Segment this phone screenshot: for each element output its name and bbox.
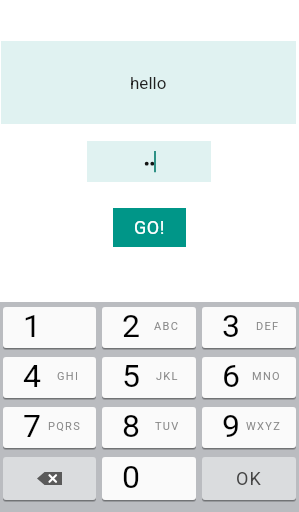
button[interactable]: 5 bbox=[102, 352, 196, 402]
staticText: 1 bbox=[23, 307, 41, 345]
button[interactable]: 1 bbox=[3, 302, 96, 352]
staticText: 7 bbox=[23, 407, 41, 445]
button[interactable]: hello bbox=[1, 41, 296, 124]
button[interactable]: 2 bbox=[102, 302, 196, 352]
staticText: hello bbox=[130, 73, 167, 93]
button[interactable] bbox=[87, 141, 211, 182]
button[interactable]: 3 bbox=[202, 302, 296, 352]
button[interactable]: 4 bbox=[3, 352, 96, 402]
button[interactable]: 8 bbox=[102, 402, 196, 452]
staticText: WXYZ bbox=[246, 420, 282, 433]
button[interactable]: Backspace bbox=[3, 452, 96, 504]
staticText: GO! bbox=[134, 217, 165, 238]
staticText: 0 bbox=[122, 458, 140, 496]
staticText: TUV bbox=[155, 420, 180, 433]
staticText: MNO bbox=[252, 370, 281, 383]
staticText: 5 bbox=[122, 357, 140, 395]
button[interactable]: 9 bbox=[202, 402, 296, 452]
staticText: OK bbox=[236, 468, 263, 489]
staticText: 4 bbox=[23, 357, 41, 395]
button[interactable]: 6 bbox=[202, 352, 296, 402]
staticText: 3 bbox=[222, 307, 240, 345]
staticText: ABC bbox=[154, 320, 180, 333]
staticText: 9 bbox=[222, 407, 240, 445]
button[interactable]: GO! bbox=[113, 208, 186, 247]
staticText: 8 bbox=[122, 407, 140, 445]
button[interactable]: 0 bbox=[102, 452, 196, 504]
button[interactable]: OK bbox=[202, 452, 296, 504]
staticText: GHI bbox=[57, 370, 80, 383]
staticText: DEF bbox=[256, 320, 280, 333]
button[interactable]: 7 bbox=[3, 402, 96, 452]
staticText: 2 bbox=[122, 307, 140, 345]
staticText: PQRS bbox=[48, 420, 82, 433]
staticText: 6 bbox=[222, 357, 240, 395]
staticText: JKL bbox=[156, 370, 179, 383]
